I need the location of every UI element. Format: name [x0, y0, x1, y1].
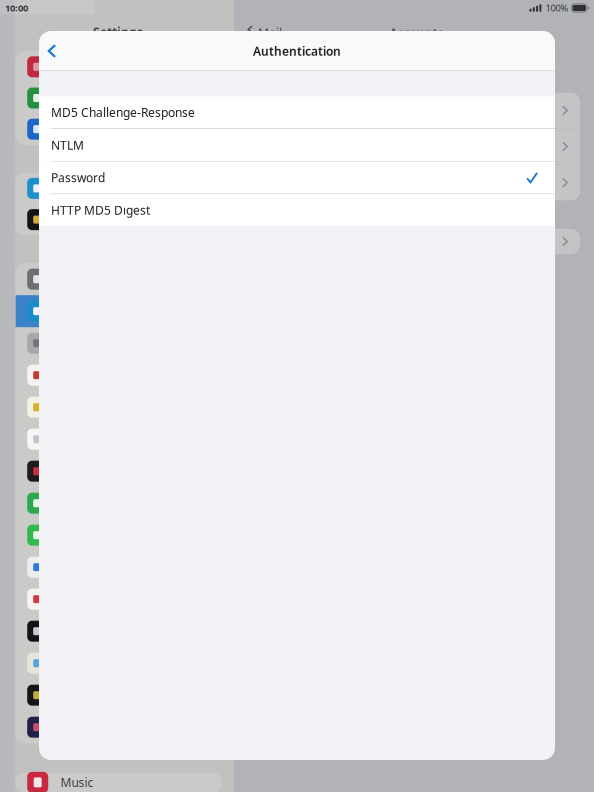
- staticText: Password: [51, 170, 105, 185]
- button[interactable]: Back: [39, 32, 72, 70]
- button[interactable]: Password: [39, 162, 555, 194]
- button[interactable]: HTTP MD5 Digest: [39, 194, 555, 226]
- staticText: Authentication: [253, 43, 341, 59]
- staticText: 10:00: [5, 2, 28, 14]
- staticText: Mail: [258, 25, 282, 41]
- staticText: NTLM: [51, 137, 84, 153]
- staticText: HTTP MD5 Digest: [51, 202, 150, 218]
- staticText: Music: [61, 774, 94, 790]
- staticText: Accounts: [389, 25, 443, 41]
- staticText: MD5 Challenge-Response: [51, 104, 195, 120]
- staticText: 100%: [545, 2, 568, 14]
- staticText: Settings: [93, 24, 143, 40]
- button[interactable]: NTLM: [39, 129, 555, 161]
- button[interactable]: MD5 Challenge-Response: [39, 96, 555, 128]
